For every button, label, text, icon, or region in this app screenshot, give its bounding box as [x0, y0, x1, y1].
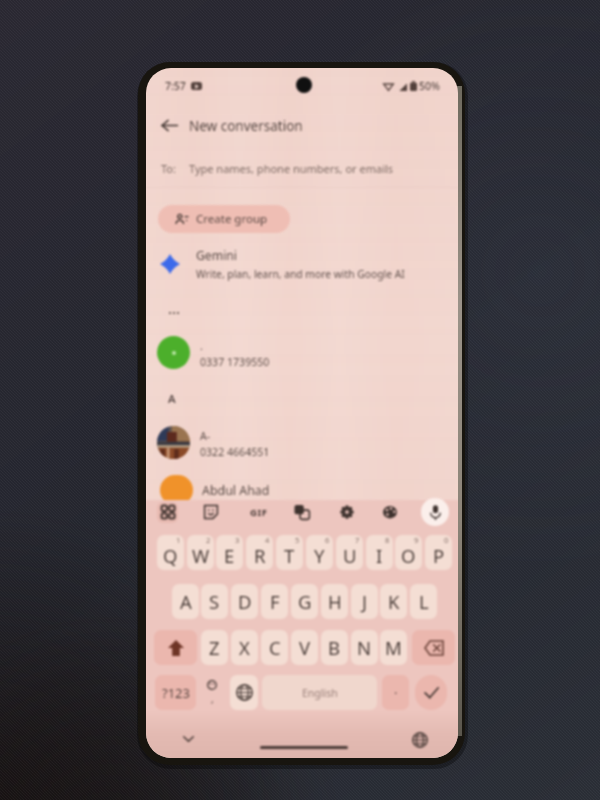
button[interactable] [230, 675, 258, 710]
staticText: . [394, 680, 398, 698]
button[interactable]: R [246, 535, 273, 570]
button[interactable]: Gemini [146, 240, 458, 288]
button[interactable]: Stickers [198, 499, 224, 525]
staticText: A [180, 589, 192, 614]
button[interactable]: Shift [154, 630, 197, 665]
button[interactable]: Enter [415, 675, 447, 710]
button[interactable]: I [366, 535, 393, 570]
button[interactable]: L [410, 584, 437, 619]
staticText: 0322 4664551 [200, 445, 270, 459]
button[interactable]: W [187, 535, 214, 570]
button[interactable]: A [172, 584, 199, 619]
staticText: O [401, 543, 416, 568]
staticText: Z [209, 635, 220, 660]
staticText: 1 [176, 535, 181, 545]
staticText: V [299, 635, 311, 660]
staticText: 0337 1739550 [200, 355, 270, 369]
button[interactable]: A- [146, 420, 458, 464]
staticText: , [211, 692, 214, 706]
staticText: P [433, 543, 445, 568]
staticText: A [168, 391, 176, 407]
staticText: M [385, 635, 402, 660]
button[interactable]: J [351, 584, 378, 619]
button[interactable]: Q [157, 535, 184, 570]
staticText: E [224, 543, 235, 568]
button[interactable]: S [201, 584, 228, 619]
staticText: B [328, 635, 341, 660]
button[interactable]: Back [155, 111, 183, 139]
button[interactable]: P [425, 535, 452, 570]
staticText: 50% [419, 79, 440, 93]
staticText: G [298, 589, 312, 614]
staticText: L [419, 589, 429, 614]
button[interactable]: Switch language [411, 731, 429, 749]
staticText: D [238, 589, 252, 614]
staticText: J [362, 589, 368, 614]
staticText: Create group [196, 211, 268, 227]
button[interactable]: ?123 [155, 675, 196, 710]
button[interactable]: D [231, 584, 258, 619]
staticText: To: [161, 161, 176, 176]
staticText: A- [200, 429, 211, 443]
staticText: R [254, 543, 266, 568]
button[interactable]: H [321, 584, 348, 619]
button[interactable]: Create group [158, 205, 290, 233]
button[interactable]: Abdul Ahad [146, 475, 458, 505]
staticText: U [343, 543, 357, 568]
button[interactable]: Voice input [421, 498, 449, 526]
staticText: 8 [385, 535, 390, 545]
button[interactable]: F [261, 584, 288, 619]
button[interactable]: . [146, 330, 458, 374]
button[interactable]: Backspace [412, 630, 455, 665]
button[interactable]: O [395, 535, 422, 570]
staticText: Y [314, 543, 325, 568]
staticText: I [376, 543, 383, 568]
button[interactable]: B [321, 630, 348, 665]
staticText: 5 [295, 535, 300, 545]
button[interactable]: T [276, 535, 303, 570]
staticText: 4 [265, 535, 270, 545]
staticText: N [357, 635, 372, 660]
staticText: Type names, phone numbers, or emails [189, 161, 394, 176]
button[interactable]: Y [306, 535, 333, 570]
button[interactable]: N [351, 630, 378, 665]
staticText: 7:57 [165, 79, 186, 93]
staticText: W [192, 543, 210, 568]
staticText: F [270, 589, 280, 614]
button[interactable]: X [231, 630, 258, 665]
button[interactable]: E [216, 535, 243, 570]
button[interactable]: Translate [289, 499, 315, 525]
button[interactable]: English [262, 675, 377, 710]
staticText: T [284, 543, 295, 568]
staticText: 0 [444, 535, 449, 545]
button[interactable]: G [291, 584, 318, 619]
button[interactable]: Apps [155, 499, 181, 525]
staticText: GIF [250, 506, 268, 519]
staticText: English [302, 686, 338, 700]
button[interactable]: V [291, 630, 318, 665]
button[interactable]: Theme [377, 499, 403, 525]
button[interactable]: C [261, 630, 288, 665]
button[interactable]: . [382, 675, 409, 710]
staticText: 3 [235, 535, 240, 545]
staticText: ?123 [162, 684, 190, 702]
staticText: X [239, 635, 250, 660]
button[interactable]: Emoji [198, 675, 226, 710]
staticText: K [388, 589, 400, 614]
button[interactable]: M [380, 630, 407, 665]
button[interactable]: Z [201, 630, 228, 665]
button[interactable]: Settings [334, 499, 360, 525]
staticText: Q [163, 543, 178, 568]
staticText: Abdul Ahad [202, 482, 270, 499]
button[interactable]: U [336, 535, 363, 570]
button[interactable]: Hide keyboard [179, 730, 197, 748]
staticText: Write, plan, learn, and more with Google… [196, 267, 405, 281]
staticText: Gemini [196, 247, 237, 264]
staticText: H [328, 589, 342, 614]
button[interactable]: K [380, 584, 407, 619]
staticText: 2 [206, 535, 211, 545]
staticText: S [209, 589, 220, 614]
button[interactable]: GIF [246, 499, 272, 525]
staticText: 6 [325, 535, 330, 545]
staticText: New conversation [189, 117, 303, 135]
